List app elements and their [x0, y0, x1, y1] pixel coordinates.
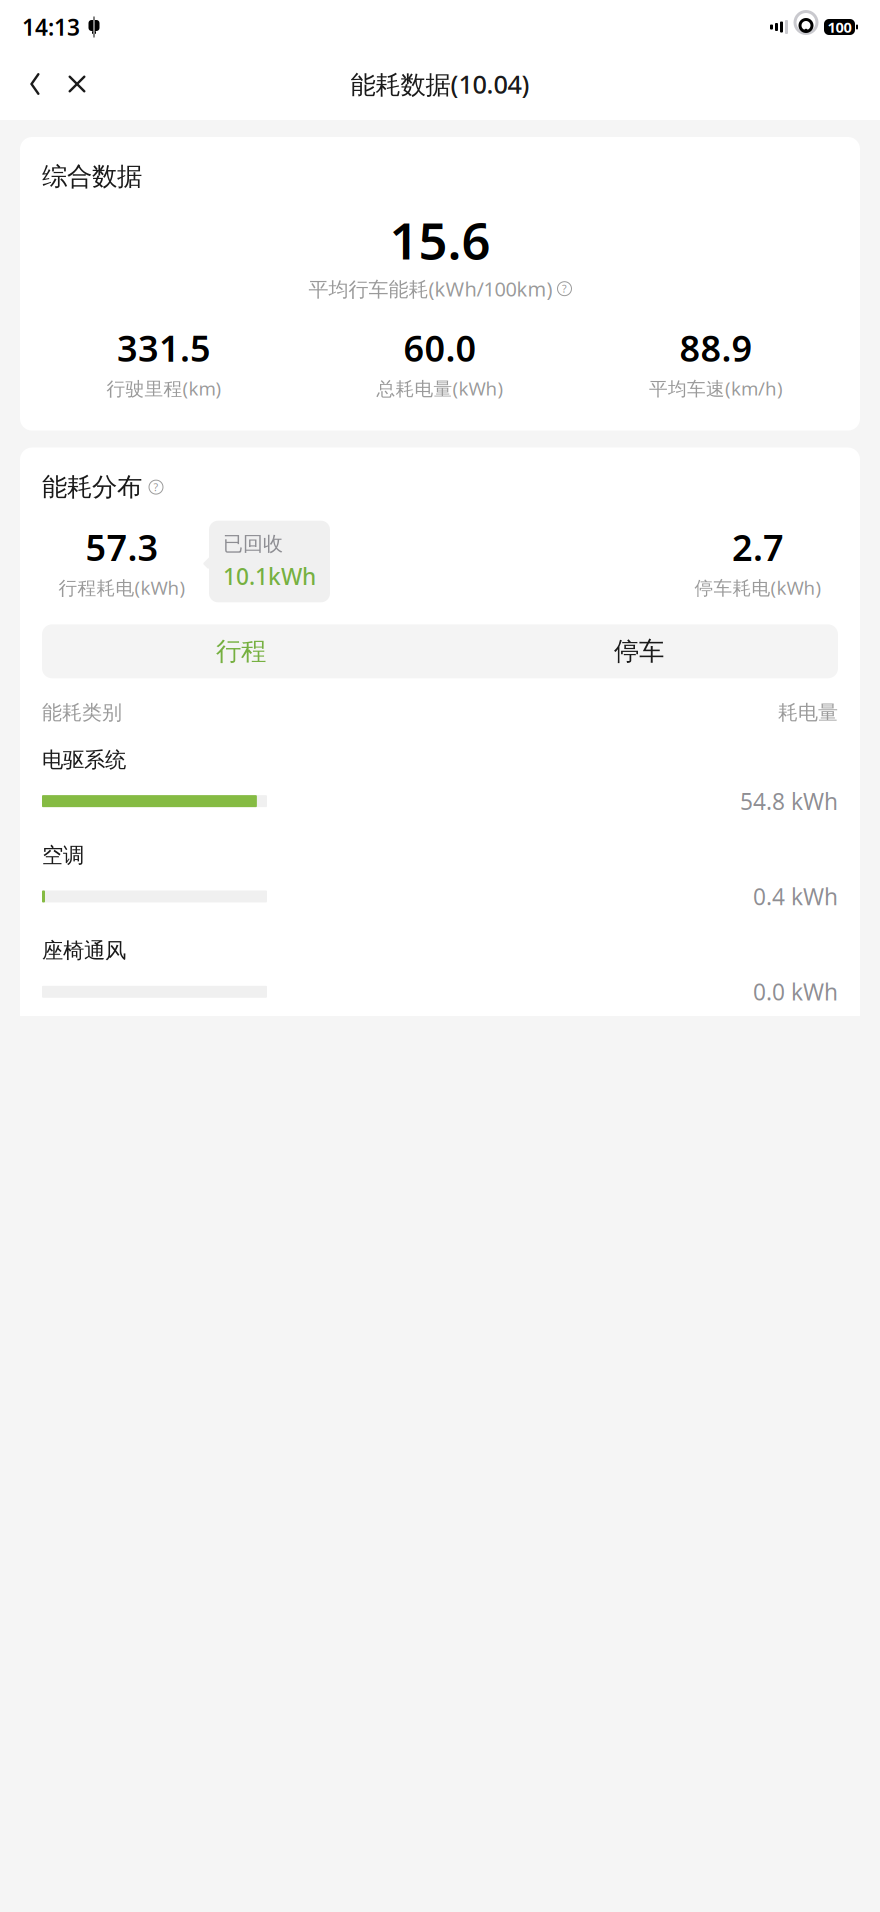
staticText: 100: [827, 17, 851, 37]
staticText: 14:13: [22, 12, 80, 42]
staticText: 能耗类别: [42, 700, 122, 725]
staticText: 0.0 kWh: [753, 977, 838, 1007]
staticText: 54.8 kWh: [740, 786, 838, 816]
staticText: 平均行车能耗(kWh/100km): [308, 275, 552, 302]
button[interactable]: 停车: [440, 624, 838, 678]
staticText: 15.6: [389, 206, 490, 273]
button[interactable]: Close: [56, 62, 98, 106]
staticText: 能耗分布: [42, 472, 142, 503]
staticText: 60.0: [403, 324, 476, 372]
staticText: 57.3: [85, 523, 158, 571]
staticText: 电驱系统: [42, 747, 126, 773]
staticText: 能耗数据(10.04): [350, 67, 529, 101]
staticText: 331.5: [117, 324, 211, 372]
staticText: 2.7: [732, 523, 784, 571]
staticText: ?: [562, 282, 567, 296]
staticText: 综合数据: [42, 161, 142, 192]
staticText: 88.9: [679, 324, 752, 372]
button[interactable]: 能耗分布: [42, 472, 163, 503]
staticText: 耗电量: [778, 700, 838, 725]
staticText: 行程耗电(kWh): [58, 575, 185, 600]
staticText: 行驶里程(km): [106, 376, 221, 401]
staticText: 总耗电量(kWh): [376, 376, 503, 401]
staticText: 停车: [614, 636, 664, 667]
button[interactable]: 行程: [42, 624, 440, 678]
button[interactable]: 平均行车能耗(kWh/100km): [308, 275, 571, 302]
staticText: 停车耗电(kWh): [694, 575, 821, 600]
staticText: 行程: [216, 636, 266, 667]
staticText: 座椅通风: [42, 937, 126, 964]
staticText: 10.1kWh: [223, 561, 316, 591]
staticText: 空调: [42, 842, 84, 868]
button[interactable]: Back: [14, 62, 56, 106]
staticText: ?: [153, 480, 158, 494]
staticText: 已回收: [223, 532, 283, 556]
staticText: 平均车速(km/h): [649, 376, 783, 401]
staticText: 0.4 kWh: [753, 881, 838, 911]
